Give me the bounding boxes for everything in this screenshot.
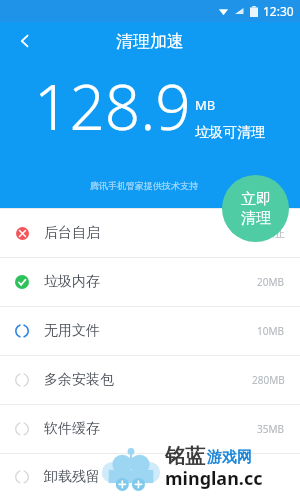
button[interactable]: 垃圾内存 <box>0 258 300 306</box>
staticText: 清理 <box>241 209 271 228</box>
staticText: 280MB <box>252 373 285 387</box>
staticText: 35MB <box>257 422 285 436</box>
staticText: 128.9 <box>34 64 191 148</box>
staticText: MB <box>195 96 216 114</box>
staticText: minglan.cc <box>165 466 263 491</box>
staticText: 后台自启 <box>44 224 100 242</box>
staticText: 软件缓存 <box>44 420 100 438</box>
staticText: 10MB <box>257 324 285 338</box>
staticText: 游戏网 <box>207 448 252 467</box>
button[interactable]: 后台自启 <box>0 209 300 257</box>
staticText: 卸载残留 <box>44 468 100 486</box>
staticText: 铭蓝 <box>165 444 205 469</box>
staticText: 垃圾内存 <box>44 273 100 291</box>
staticText: 多余安装包 <box>44 371 114 389</box>
button[interactable]: 软件缓存 <box>0 405 300 453</box>
staticText: 清理加速 <box>116 31 184 52</box>
staticText: 无用文件 <box>44 322 100 340</box>
button[interactable]: 多余安装包 <box>0 356 300 404</box>
staticText: 腾讯手机管家提供技术支持 <box>90 180 198 191</box>
button[interactable]: Back <box>8 24 42 58</box>
staticText: 12:30 <box>263 3 294 19</box>
button[interactable]: 卸载残留 <box>0 454 300 500</box>
button[interactable]: 无用文件 <box>0 307 300 355</box>
button[interactable]: 立即 <box>222 175 289 242</box>
staticText: 20MB <box>257 275 285 289</box>
staticText: 垃圾可清理 <box>195 124 265 142</box>
staticText: 立即 <box>241 190 271 209</box>
staticText: 禁止 <box>265 227 285 240</box>
